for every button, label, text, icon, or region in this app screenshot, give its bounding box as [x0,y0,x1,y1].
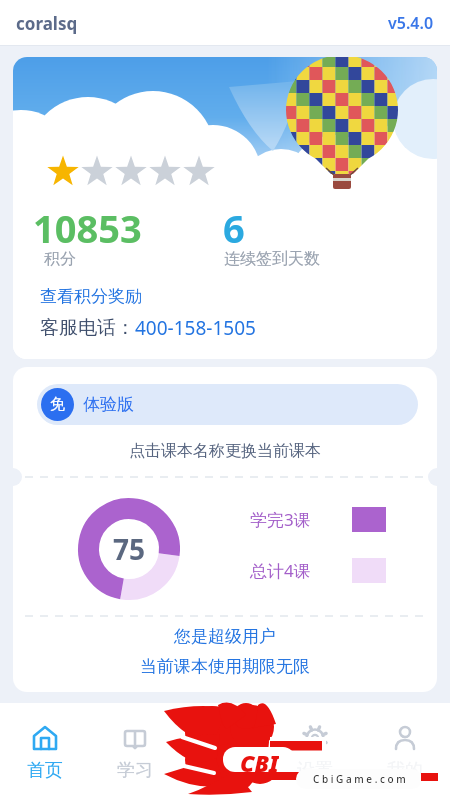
button[interactable]: 免 [37,384,418,425]
staticText: 10853 [33,202,142,244]
staticText: 课本 [207,759,243,782]
staticText: 您是超级用户 [174,626,276,647]
staticText: 点击课本名称更换当前课本 [129,441,321,461]
button[interactable]: 首页 [0,703,90,800]
staticText: 我的 [387,759,423,782]
button[interactable]: 我的 [360,703,450,800]
staticText: CBI [240,747,279,772]
staticText: 设置 [297,759,333,782]
button[interactable]: 点击课本名称更换当前课本 [13,438,437,464]
staticText: coralsq [16,12,78,35]
staticText: 6 [223,202,245,244]
staticText: 75 [113,530,146,568]
staticText: 当前课本使用期限无限 [140,656,310,677]
staticText: 总计4课 [250,559,311,582]
staticText: 客服电话： [40,316,135,340]
staticText: 首页 [27,759,63,782]
staticText: 学习 [117,759,153,782]
button[interactable]: 学习 [90,703,180,800]
button[interactable]: 设置 [270,703,360,800]
staticText: 查看积分奖励 [40,286,142,307]
staticText: 400-158-1505 [135,315,256,341]
staticText: 免 [50,395,65,414]
staticText: 积分 [44,249,76,269]
staticText: v5.4.0 [388,12,434,34]
button[interactable]: 客服电话： [40,313,256,343]
staticText: 学完3课 [250,508,311,531]
button[interactable]: 查看积分奖励 [40,283,200,309]
staticText: 连续签到天数 [224,249,320,269]
staticText: C b i G a m e . c o m [313,772,406,786]
staticText: 体验版 [83,394,134,415]
button[interactable]: 课本 [180,703,270,800]
